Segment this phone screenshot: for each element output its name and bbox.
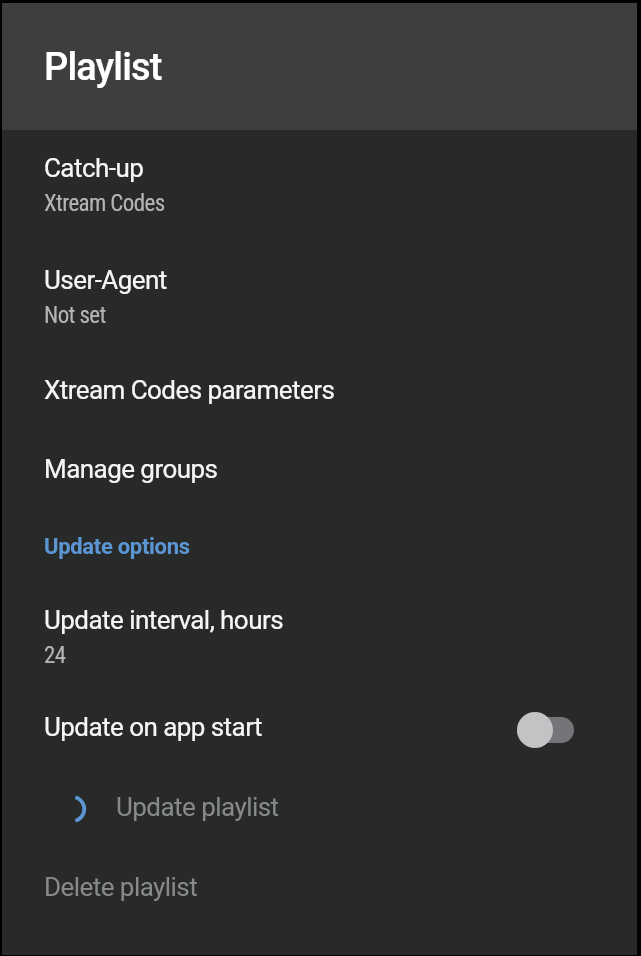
button[interactable]: Update on app start, off bbox=[517, 708, 574, 752]
staticText: Playlist bbox=[44, 45, 162, 90]
button[interactable]: User-Agent bbox=[2, 240, 637, 352]
button[interactable]: Delete playlist bbox=[2, 848, 637, 927]
button[interactable]: Updating playlist bbox=[2, 769, 637, 848]
button[interactable]: Catch-up bbox=[2, 130, 637, 240]
staticText: User-Agent bbox=[44, 265, 167, 295]
staticText: Delete playlist bbox=[44, 872, 198, 902]
button[interactable]: Update interval, hours bbox=[2, 585, 637, 690]
staticText: Update on app start bbox=[44, 712, 263, 742]
button[interactable]: Update on app start bbox=[2, 690, 637, 769]
button[interactable]: Manage groups bbox=[2, 431, 637, 510]
button[interactable]: Xtream Codes parameters bbox=[2, 352, 637, 431]
staticText: Manage groups bbox=[44, 454, 218, 484]
staticText: Update interval, hours bbox=[44, 605, 284, 635]
staticText: Xtream Codes parameters bbox=[44, 375, 335, 405]
staticText: Not set bbox=[44, 302, 106, 329]
staticText: 24 bbox=[44, 642, 66, 669]
staticText: Update playlist bbox=[116, 792, 279, 822]
other: Updating playlist bbox=[58, 795, 86, 823]
staticText: Catch-up bbox=[44, 153, 144, 183]
staticText: Xtream Codes bbox=[44, 190, 165, 217]
staticText: Update options bbox=[44, 534, 190, 560]
